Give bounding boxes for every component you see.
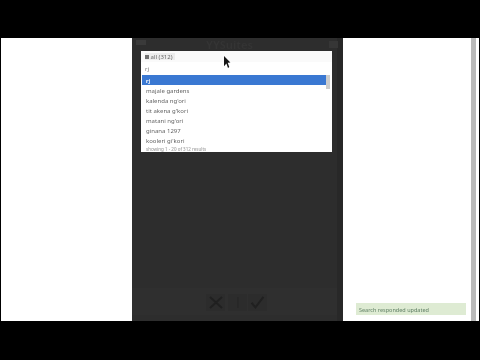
- button[interactable]: rj: [142, 75, 326, 85]
- staticText: YYSuites: [206, 37, 254, 52]
- staticText: rj: [146, 77, 151, 85]
- button[interactable]: Confirm: [248, 294, 267, 311]
- button[interactable]: tit akena g'kori: [141, 105, 332, 115]
- staticText: tit akena g'kori: [146, 107, 188, 115]
- button[interactable]: matani ng'ori: [141, 115, 332, 125]
- staticText: all (312): [149, 53, 175, 60]
- staticText: Search responded updated: [359, 306, 429, 313]
- button[interactable]: kalenda ng'ori: [141, 95, 332, 105]
- staticText: showing 1 - 20 of 312 results: [146, 146, 207, 152]
- staticText: kalenda ng'ori: [146, 97, 186, 105]
- staticText: majale gardens: [146, 87, 190, 95]
- staticText: matani ng'ori: [146, 117, 184, 125]
- button[interactable]: ginana 1297: [141, 125, 332, 135]
- button[interactable]: all (312): [145, 53, 175, 60]
- button[interactable]: Search responded updated: [356, 303, 466, 315]
- button[interactable]: Cancel: [206, 294, 225, 311]
- staticText: rj: [145, 65, 150, 73]
- staticText: kooleri gi'kori: [146, 137, 185, 145]
- button[interactable]: kooleri gi'kori: [141, 135, 332, 145]
- staticText: ginana 1297: [146, 127, 181, 135]
- button[interactable]: rj: [141, 62, 332, 75]
- button[interactable]: majale gardens: [141, 85, 332, 95]
